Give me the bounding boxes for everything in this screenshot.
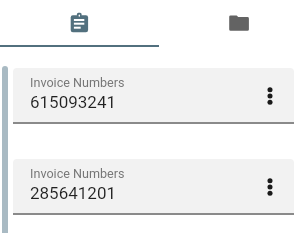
button[interactable]: Invoice Numbers xyxy=(13,68,294,124)
staticText: 615093241 xyxy=(30,92,116,112)
button[interactable]: Invoices tab xyxy=(0,0,159,45)
staticText: 285641201 xyxy=(30,183,116,203)
button[interactable]: Folders tab xyxy=(159,0,308,45)
button[interactable]: More options xyxy=(257,174,283,200)
button[interactable]: Invoice Numbers xyxy=(13,159,294,215)
button[interactable]: More options xyxy=(257,83,283,109)
staticText: Invoice Numbers xyxy=(30,75,125,90)
staticText: Invoice Numbers xyxy=(30,166,125,181)
